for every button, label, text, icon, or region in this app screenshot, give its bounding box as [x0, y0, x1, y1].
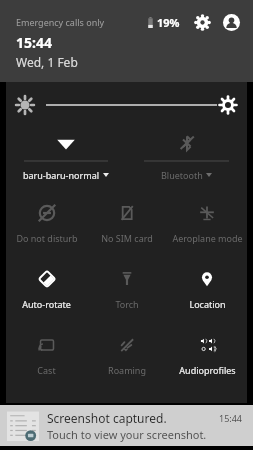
- button[interactable]: Do not disturb: [6, 190, 87, 256]
- staticText: 19%: [157, 15, 180, 30]
- button[interactable]: Settings: [191, 11, 213, 33]
- button[interactable]: Auto-rotate: [6, 256, 87, 322]
- button[interactable]: baru-baru-normal: [6, 128, 126, 190]
- staticText: Audioprofiles: [179, 364, 236, 376]
- button[interactable]: Location: [167, 256, 247, 322]
- staticText: Emergency calls only: [16, 16, 105, 28]
- button[interactable]: Screenshot captured.: [0, 405, 253, 446]
- staticText: Touch to view your screenshot.: [47, 427, 207, 442]
- staticText: Cast: [37, 364, 56, 376]
- button[interactable]: Aeroplane mode: [167, 190, 247, 256]
- staticText: No SIM card: [101, 232, 153, 244]
- button[interactable]: No SIM card: [87, 190, 167, 256]
- button[interactable]: Audioprofiles: [167, 322, 247, 388]
- staticText: Screenshot captured.: [47, 410, 167, 426]
- staticText: 15:44: [16, 33, 52, 52]
- staticText: Do not disturb: [16, 232, 78, 244]
- staticText: Wed, 1 Feb: [16, 54, 78, 70]
- button[interactable]: Roaming: [87, 322, 167, 388]
- staticText: baru-baru-normal: [23, 169, 100, 181]
- staticText: 15:44: [219, 412, 243, 424]
- staticText: Aeroplane mode: [172, 232, 243, 244]
- staticText: Torch: [115, 298, 139, 310]
- button[interactable]: Brightness: [6, 82, 247, 128]
- staticText: Bluetooth: [161, 169, 203, 181]
- staticText: Auto-rotate: [22, 298, 71, 310]
- button[interactable]: Torch: [87, 256, 167, 322]
- staticText: Roaming: [108, 364, 146, 376]
- button[interactable]: User account: [219, 10, 243, 34]
- button[interactable]: Cast: [6, 322, 87, 388]
- staticText: Location: [189, 298, 226, 310]
- button[interactable]: Bluetooth: [126, 128, 247, 190]
